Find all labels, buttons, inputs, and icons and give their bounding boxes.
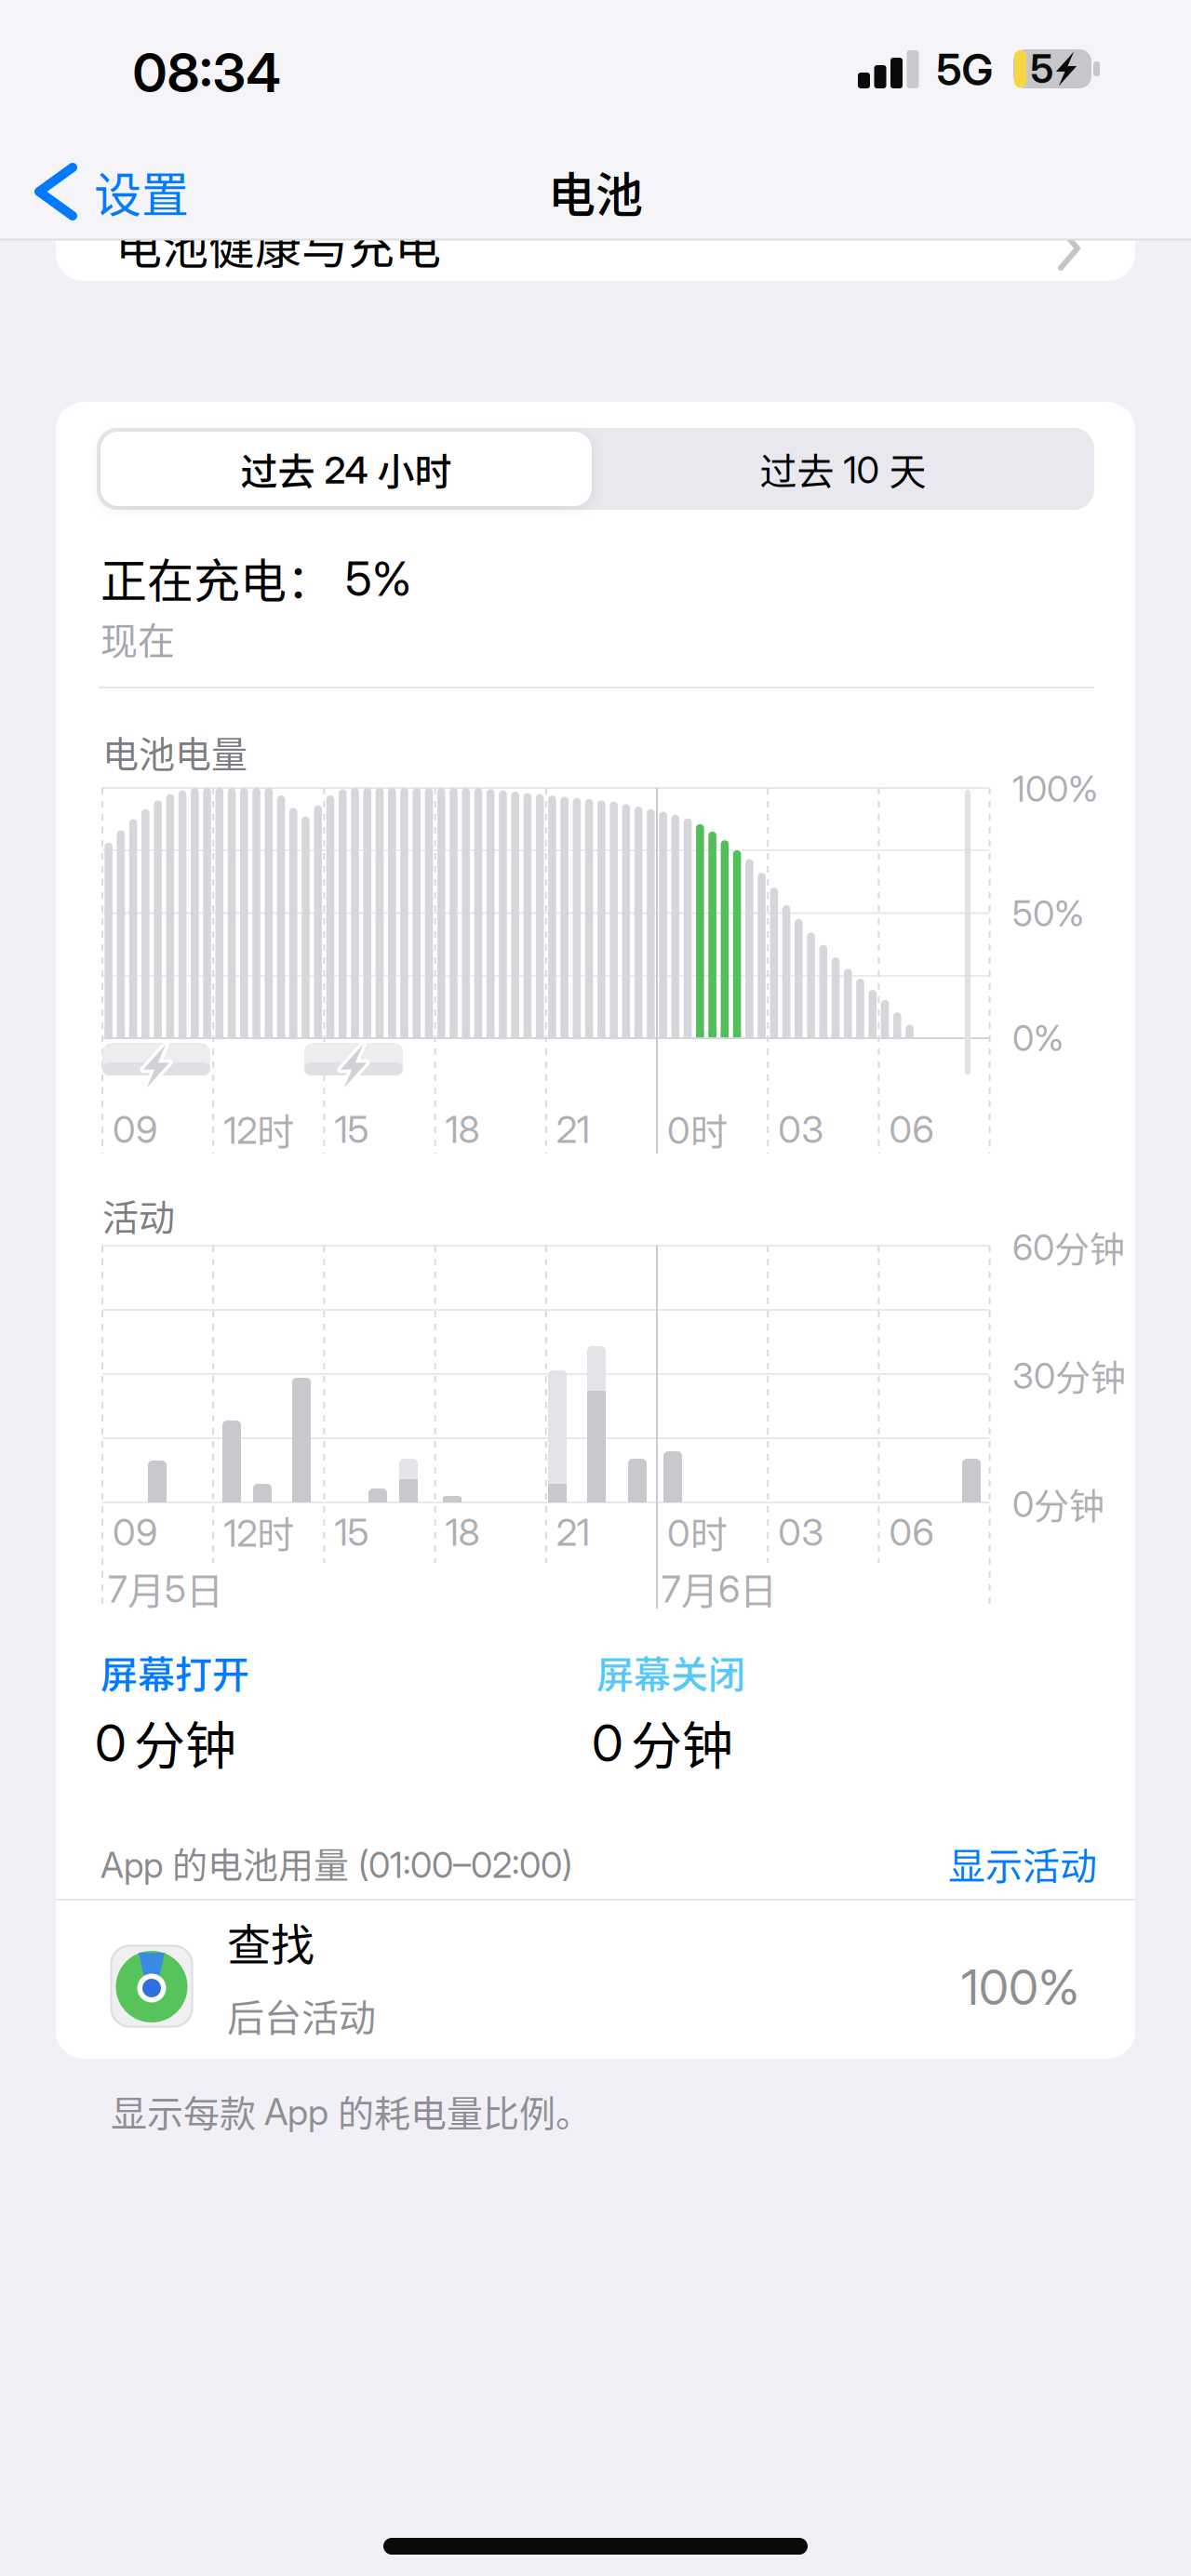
- button[interactable]: 查找: [0, 0, 1191, 2576]
- staticText: 设置: [94, 157, 189, 226]
- staticText: 后台活动: [227, 1988, 376, 2042]
- staticText: 03: [778, 1107, 824, 1152]
- staticText: 12时: [223, 1102, 294, 1156]
- staticText: 21: [556, 1107, 590, 1152]
- staticText: 0 分钟: [95, 1704, 236, 1779]
- staticText: 0分钟: [1012, 1478, 1104, 1529]
- staticText: 06: [889, 1107, 934, 1152]
- staticText: 5G: [937, 44, 993, 96]
- staticText: 08:34: [133, 40, 281, 105]
- staticText: 0%: [1012, 1017, 1064, 1060]
- staticText: 5: [1030, 45, 1054, 92]
- staticText: 显示每款 App 的耗电量比例。: [111, 2085, 592, 2137]
- button[interactable]: 过去 10 天: [0, 0, 1191, 2576]
- staticText: 06: [889, 1510, 934, 1555]
- staticText: 7月5日: [108, 1561, 223, 1615]
- staticText: 0 分钟: [592, 1704, 733, 1779]
- staticText: 100%: [961, 1958, 1079, 2016]
- staticText: 21: [556, 1510, 590, 1555]
- staticText: 电池健康与充电: [115, 210, 441, 277]
- staticText: 活动: [102, 1189, 175, 1241]
- staticText: 60分钟: [1012, 1221, 1125, 1272]
- staticText: 过去 10 天: [760, 442, 926, 496]
- staticText: 正在充电： 5%: [100, 544, 411, 611]
- staticText: 电池: [548, 157, 643, 226]
- staticText: 过去 24 小时: [241, 442, 452, 496]
- button[interactable]: 过去 24 小时: [0, 0, 1191, 2576]
- staticText: 查找: [227, 1910, 314, 1973]
- staticText: 18: [445, 1107, 480, 1152]
- button[interactable]: 显示活动: [0, 0, 1191, 2576]
- staticText: 15: [334, 1107, 369, 1152]
- staticText: 0时: [667, 1102, 728, 1156]
- staticText: 30分钟: [1012, 1349, 1126, 1401]
- staticText: App 的电池用量 (01:00–02:00): [100, 1837, 572, 1888]
- staticText: 50%: [1012, 892, 1084, 935]
- staticText: 09: [113, 1107, 157, 1152]
- staticText: 100%: [1012, 767, 1098, 810]
- staticText: 电池电量: [102, 725, 248, 778]
- button[interactable]: 电池健康与充电: [0, 0, 1191, 2576]
- staticText: 显示活动: [948, 1836, 1097, 1890]
- staticText: 18: [445, 1510, 480, 1555]
- staticText: 09: [113, 1510, 157, 1555]
- staticText: 现在: [100, 611, 175, 665]
- staticText: 0时: [667, 1505, 728, 1559]
- staticText: 屏幕打开: [100, 1645, 249, 1699]
- button[interactable]: 设置: [0, 0, 1191, 2576]
- staticText: 12时: [223, 1505, 294, 1559]
- staticText: 03: [778, 1510, 824, 1555]
- staticText: 屏幕关闭: [596, 1645, 745, 1699]
- staticText: 15: [334, 1510, 369, 1555]
- staticText: 7月6日: [662, 1561, 777, 1615]
